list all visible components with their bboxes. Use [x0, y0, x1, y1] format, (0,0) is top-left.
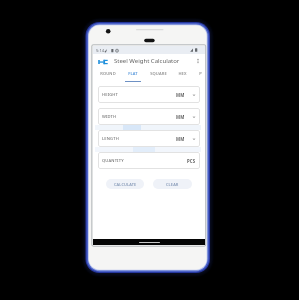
staticText: P — [199, 71, 202, 77]
staticText: ROUND — [100, 71, 116, 77]
button[interactable]: HEX — [171, 68, 194, 82]
staticText: PCS — [187, 158, 196, 164]
button[interactable]: CLEAR — [153, 179, 192, 189]
button[interactable]: More options — [194, 57, 202, 65]
staticText: FLAT — [128, 71, 138, 77]
button[interactable]: LENGTH — [98, 130, 200, 147]
staticText: 5:14 — [96, 48, 105, 54]
staticText: Steel Weight Calculator — [114, 57, 180, 65]
button[interactable]: Navigate up — [97, 56, 108, 67]
staticText: WIDTH — [102, 114, 117, 120]
staticText: LENGTH — [102, 136, 119, 142]
button[interactable]: HEIGHT — [98, 86, 200, 103]
button[interactable]: P — [189, 68, 212, 82]
staticText: QUANTITY — [102, 158, 124, 164]
button[interactable]: FLAT — [121, 68, 144, 82]
staticText: SQUARE — [150, 71, 167, 77]
button[interactable]: WIDTH — [98, 108, 200, 125]
staticText: HEX — [178, 71, 187, 77]
staticText: CALCULATE — [114, 182, 137, 187]
staticText: CLEAR — [166, 182, 179, 187]
staticText: MM — [176, 136, 185, 142]
staticText: MM — [176, 114, 185, 120]
button[interactable]: SQUARE — [147, 68, 170, 82]
staticText: MM — [176, 92, 185, 98]
button[interactable]: QUANTITY — [98, 152, 200, 169]
staticText: HEIGHT — [102, 92, 119, 98]
button[interactable]: CALCULATE — [106, 179, 144, 189]
button[interactable]: ROUND — [96, 68, 119, 82]
